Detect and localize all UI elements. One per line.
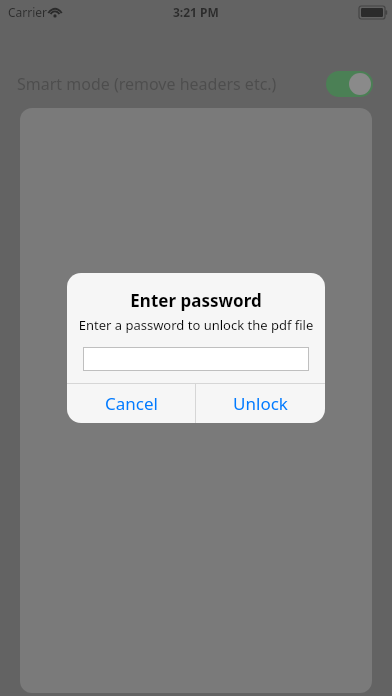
button[interactable]: Smart mode toggle, on <box>326 71 373 97</box>
button[interactable]: Cancel <box>67 384 195 423</box>
staticText: 3:21 PM <box>173 4 219 20</box>
staticText: Smart mode (remove headers etc.) <box>17 73 277 95</box>
staticText: Carrier <box>8 4 48 20</box>
staticText: Enter a password to unlock the pdf file <box>75 316 317 334</box>
button[interactable] <box>83 347 309 371</box>
staticText: Unlock <box>233 392 288 415</box>
button[interactable]: Unlock <box>196 384 325 423</box>
staticText: Cancel <box>105 392 158 415</box>
staticText: Enter password <box>67 289 325 312</box>
